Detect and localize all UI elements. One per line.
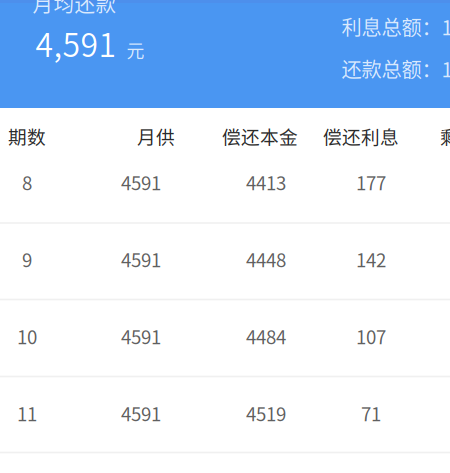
staticText: 177	[356, 168, 386, 195]
staticText: 8	[22, 168, 32, 195]
button[interactable]: 11	[0, 376, 450, 452]
staticText: 月均还款	[32, 0, 116, 18]
staticText: 10	[17, 322, 37, 349]
staticText: 71	[361, 399, 381, 426]
staticText: 期数	[8, 122, 46, 149]
staticText: 142	[356, 245, 386, 272]
button[interactable]: 9	[0, 223, 450, 299]
staticText: 4519	[246, 399, 286, 426]
staticText: 107	[356, 322, 386, 349]
staticText: 剩余本金	[440, 122, 450, 149]
staticText: 利息总额：1	[341, 12, 450, 41]
staticText: 偿还本金	[222, 122, 298, 149]
staticText: 偿还利息	[323, 122, 399, 149]
staticText: 还款总额：1	[341, 54, 450, 83]
staticText: 11	[17, 399, 37, 426]
staticText: 4591	[121, 322, 161, 349]
staticText: 9	[22, 245, 32, 272]
staticText: 4413	[246, 168, 286, 195]
staticText: 4,591	[35, 20, 116, 66]
button[interactable]: 10	[0, 299, 450, 376]
staticText: 4448	[246, 245, 286, 272]
staticText: 4484	[246, 322, 286, 349]
staticText: 4591	[121, 168, 161, 195]
staticText: 4591	[121, 245, 161, 272]
staticText: 月供	[137, 122, 175, 149]
staticText: 4591	[121, 399, 161, 426]
staticText: 元	[126, 37, 144, 63]
button[interactable]: 8	[0, 148, 450, 223]
